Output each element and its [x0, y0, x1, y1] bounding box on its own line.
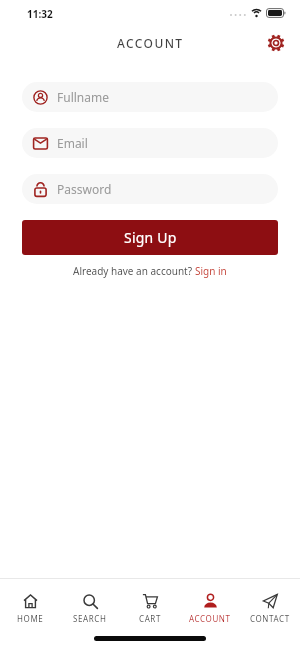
button[interactable]: Fullname	[22, 82, 278, 112]
staticText: CART	[139, 613, 161, 624]
staticText: SEARCH	[73, 613, 107, 624]
staticText: Already have an account?	[73, 264, 195, 278]
staticText: CONTACT	[250, 613, 290, 624]
staticText: Sign in	[195, 264, 227, 278]
staticText: Password	[57, 181, 112, 197]
staticText: Sign Up	[124, 228, 177, 247]
button[interactable]: SEARCH	[60, 579, 120, 628]
button[interactable]: Password	[22, 174, 278, 204]
button[interactable]: CONTACT	[240, 579, 300, 628]
button[interactable]: HOME	[0, 579, 60, 628]
staticText: Email	[57, 135, 88, 151]
button[interactable]: ACCOUNT	[180, 579, 240, 628]
staticText: Fullname	[57, 89, 109, 105]
staticText: HOME	[17, 613, 44, 624]
staticText: 11:32	[27, 7, 53, 21]
button[interactable]: CART	[120, 579, 180, 628]
staticText: ACCOUNT	[189, 613, 231, 624]
button[interactable]	[267, 34, 285, 52]
staticText: ACCOUNT	[117, 35, 184, 51]
button[interactable]: Sign in	[195, 264, 227, 278]
button[interactable]: Sign Up	[22, 220, 278, 255]
button[interactable]: Email	[22, 128, 278, 158]
